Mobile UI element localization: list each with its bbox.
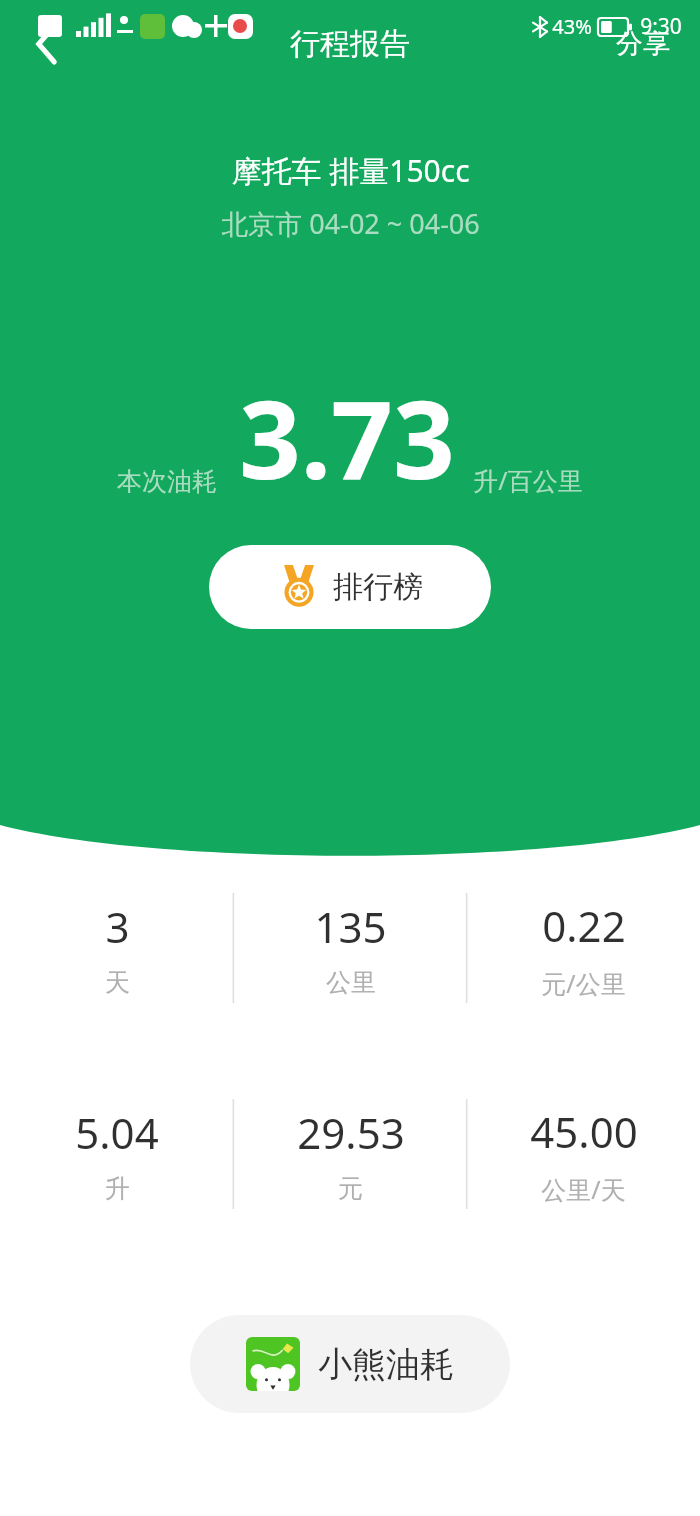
staticText: 3.73 — [239, 364, 455, 511]
staticText: 升/百公里 — [473, 463, 583, 497]
staticText: 公里/天 — [541, 1172, 626, 1206]
staticText: 本次油耗 — [117, 466, 217, 497]
staticText: 小熊油耗 — [318, 1343, 454, 1386]
button[interactable]: 分享 — [608, 19, 678, 69]
staticText: 0.22 — [542, 897, 626, 954]
staticText: 摩托车 排量150cc — [231, 150, 470, 191]
staticText: 135 — [314, 898, 387, 955]
staticText: 29.53 — [297, 1104, 405, 1161]
button[interactable]: Back — [14, 11, 80, 77]
staticText: 43% — [552, 13, 592, 40]
staticText: 公里 — [326, 967, 376, 998]
button[interactable]: 排行榜 — [209, 545, 491, 629]
staticText: 排行榜 — [333, 568, 423, 606]
staticText: 5.04 — [75, 1104, 159, 1161]
staticText: 9:30 — [640, 12, 682, 41]
staticText: 元/公里 — [541, 966, 626, 1000]
staticText: 天 — [105, 967, 130, 998]
staticText: 分享 — [616, 27, 670, 61]
staticText: 行程报告 — [290, 25, 410, 63]
staticText: 北京市 04-02 ~ 04-06 — [221, 205, 480, 242]
staticText: 元 — [338, 1173, 363, 1204]
staticText: 3 — [105, 898, 130, 955]
staticText: 升 — [105, 1173, 130, 1204]
staticText: 45.00 — [530, 1103, 638, 1160]
button[interactable]: 小熊油耗 — [190, 1315, 510, 1413]
